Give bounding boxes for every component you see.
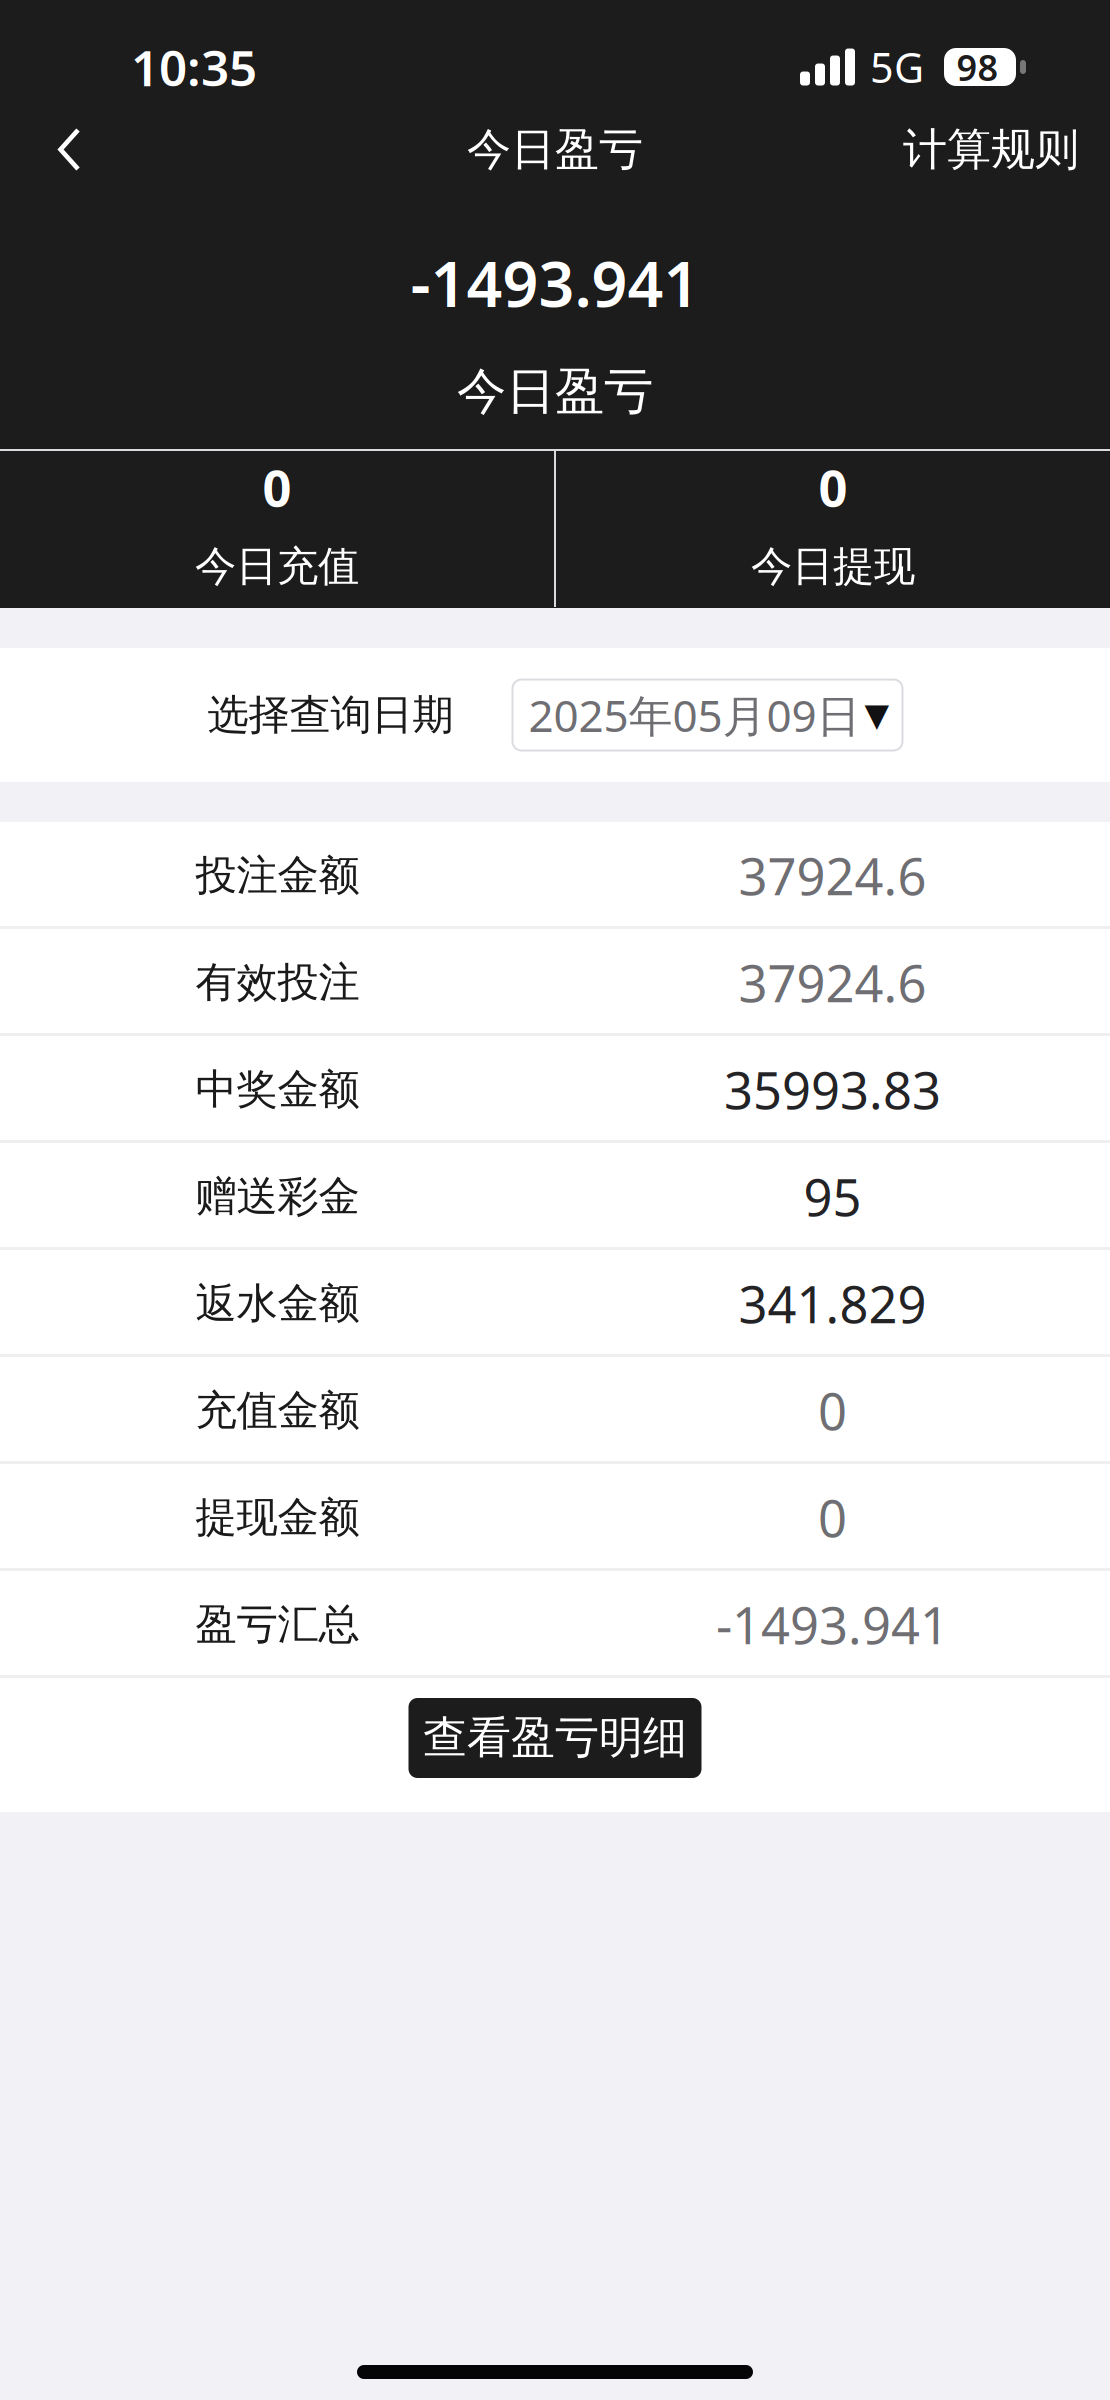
staticText: 0	[818, 1377, 847, 1444]
button[interactable]: 计算规则	[893, 97, 1089, 202]
staticText: 341.829	[738, 1270, 926, 1337]
staticText: 5G	[870, 40, 924, 94]
staticText: 投注金额	[195, 850, 359, 901]
staticText: 充值金额	[195, 1385, 359, 1436]
staticText: 10:35	[131, 34, 257, 100]
staticText: 35993.83	[724, 1056, 941, 1123]
staticText: 中奖金额	[195, 1064, 359, 1115]
button[interactable]: Back	[21, 97, 117, 202]
staticText: 37924.6	[738, 949, 926, 1016]
staticText: 95	[803, 1163, 861, 1230]
staticText: 0	[818, 1484, 847, 1551]
staticText: 盈亏汇总	[195, 1599, 359, 1650]
staticText: 2025年05月09日	[528, 686, 860, 744]
staticText: 今日提现	[751, 541, 915, 592]
button[interactable]: 2025年05月09日	[453, 679, 902, 750]
staticText: -1493.941	[410, 241, 699, 324]
staticText: 有效投注	[195, 957, 359, 1008]
staticText: 查看盈亏明细	[423, 1710, 687, 1764]
staticText: 今日充值	[195, 541, 359, 592]
staticText: 0	[262, 453, 291, 521]
staticText: 选择查询日期	[207, 690, 453, 740]
staticText: 今日盈亏	[467, 122, 643, 176]
staticText: ▼	[864, 697, 889, 733]
staticText: 提现金额	[195, 1492, 359, 1543]
staticText: 98	[956, 43, 998, 91]
staticText: 0	[818, 453, 847, 521]
staticText: 返水金额	[195, 1278, 359, 1329]
staticText: 计算规则	[903, 122, 1079, 176]
staticText: 赠送彩金	[195, 1171, 359, 1222]
button[interactable]: 查看盈亏明细	[408, 1698, 701, 1778]
staticText: 今日盈亏	[457, 361, 653, 422]
staticText: -1493.941	[716, 1591, 949, 1658]
staticText: 37924.6	[738, 842, 926, 909]
